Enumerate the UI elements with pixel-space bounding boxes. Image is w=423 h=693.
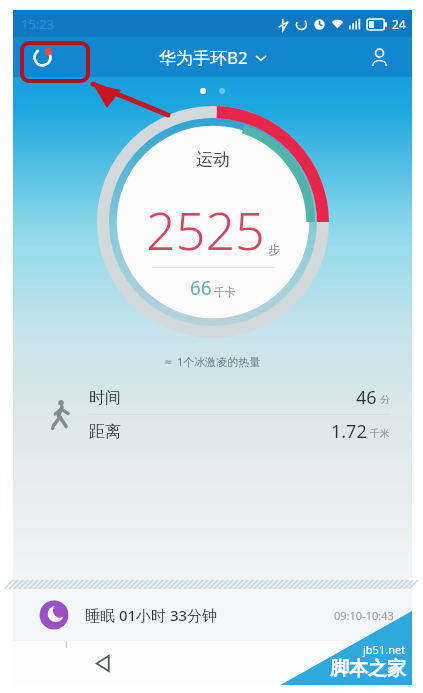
staticText: 运动 xyxy=(196,149,230,170)
staticText: 分 xyxy=(380,393,390,406)
button[interactable]: 睡眠 01小时 33分钟 xyxy=(13,589,412,641)
staticText: 09:10-10:43 xyxy=(334,608,394,623)
staticText: 66 xyxy=(190,275,212,301)
button[interactable]: 华为手环B2 xyxy=(159,46,267,69)
button[interactable]: 时间 xyxy=(89,381,390,414)
button[interactable]: 距离 xyxy=(89,415,390,448)
staticText: 1个冰激凌的热量 xyxy=(177,354,261,369)
staticText: 千米 xyxy=(370,427,390,440)
staticText: 时间 xyxy=(89,388,121,408)
staticText: 脚本之家 xyxy=(330,657,406,681)
button[interactable]: Profile xyxy=(362,40,396,74)
staticText: 千卡 xyxy=(214,285,236,299)
staticText: 15:23 xyxy=(21,15,55,33)
staticText: 睡眠 01小时 33分钟 xyxy=(85,605,218,625)
staticText: 距离 xyxy=(89,422,121,442)
button[interactable]: 运动 xyxy=(97,106,329,338)
staticText: ≈ xyxy=(164,356,173,368)
staticText: 2525 xyxy=(146,194,265,265)
staticText: 24 xyxy=(392,16,406,32)
staticText: jb51.net xyxy=(363,642,406,657)
staticText: 46 xyxy=(356,385,377,410)
staticText: 华为手环B2 xyxy=(159,46,248,69)
button[interactable]: Sync xyxy=(25,40,59,74)
staticText: 步 xyxy=(268,242,280,257)
staticText: 1.72 xyxy=(331,419,367,444)
button[interactable]: Back xyxy=(81,641,125,685)
